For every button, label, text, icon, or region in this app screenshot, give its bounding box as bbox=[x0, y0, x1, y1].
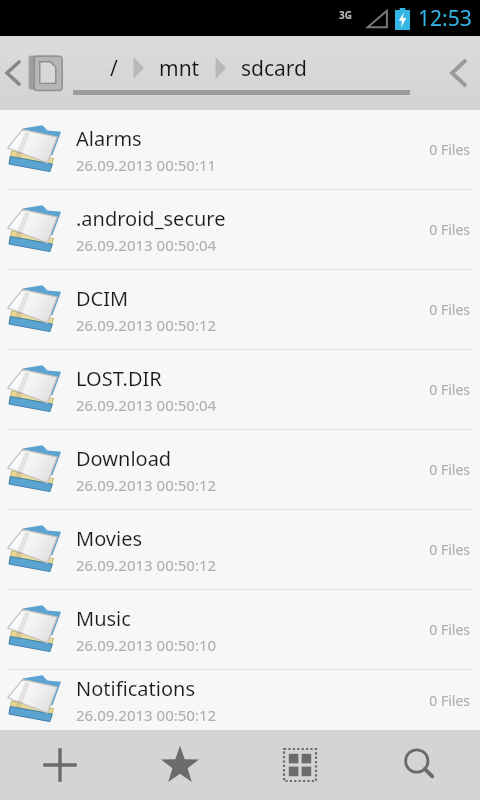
button[interactable]: Back bbox=[0, 36, 26, 110]
staticText: DCIM bbox=[76, 285, 129, 312]
staticText: LOST.DIR bbox=[76, 365, 162, 392]
staticText: .android_secure bbox=[76, 205, 226, 232]
staticText: 0 Files bbox=[429, 300, 470, 319]
staticText: 26.09.2013 00:50:12 bbox=[76, 315, 217, 335]
staticText: 0 Files bbox=[429, 540, 470, 559]
button[interactable]: Favorites bbox=[120, 730, 240, 800]
staticText: 26.09.2013 00:50:12 bbox=[76, 475, 217, 495]
staticText: / bbox=[110, 54, 118, 83]
staticText: 0 Files bbox=[429, 460, 470, 479]
button[interactable]: Add bbox=[0, 730, 120, 800]
staticText: 0 Files bbox=[429, 220, 470, 239]
button[interactable]: sdcard bbox=[227, 54, 322, 83]
button[interactable]: Alarms bbox=[0, 110, 480, 189]
staticText: 0 Files bbox=[429, 140, 470, 159]
staticText: 3G bbox=[339, 8, 352, 22]
staticText: 26.09.2013 00:50:12 bbox=[76, 705, 217, 725]
button[interactable]: Movies bbox=[0, 510, 480, 589]
button[interactable]: LOST.DIR bbox=[0, 350, 480, 429]
button[interactable]: .android_secure bbox=[0, 190, 480, 269]
button[interactable]: Storage bbox=[24, 50, 70, 96]
staticText: Notifications bbox=[76, 675, 195, 702]
staticText: 0 Files bbox=[429, 620, 470, 639]
staticText: mnt bbox=[159, 54, 200, 83]
staticText: 0 Files bbox=[429, 380, 470, 399]
staticText: Alarms bbox=[76, 125, 142, 152]
staticText: 26.09.2013 00:50:11 bbox=[76, 155, 217, 175]
staticText: 26.09.2013 00:50:04 bbox=[76, 395, 217, 415]
staticText: Download bbox=[76, 445, 172, 472]
staticText: 26.09.2013 00:50:04 bbox=[76, 235, 217, 255]
button[interactable]: Notifications bbox=[0, 670, 480, 730]
button[interactable]: mnt bbox=[145, 54, 214, 83]
staticText: 0 Files bbox=[429, 691, 470, 710]
button[interactable]: Music bbox=[0, 590, 480, 669]
button[interactable]: / bbox=[96, 54, 132, 83]
staticText: Music bbox=[76, 605, 131, 632]
button[interactable]: Download bbox=[0, 430, 480, 509]
staticText: sdcard bbox=[241, 54, 308, 83]
staticText: 26.09.2013 00:50:12 bbox=[76, 555, 217, 575]
staticText: Movies bbox=[76, 525, 143, 552]
staticText: 12:53 bbox=[418, 4, 472, 33]
staticText: 26.09.2013 00:50:10 bbox=[76, 635, 217, 655]
button[interactable]: DCIM bbox=[0, 270, 480, 349]
button[interactable]: Search bbox=[360, 730, 480, 800]
button[interactable]: Grid view bbox=[240, 730, 360, 800]
button[interactable]: Collapse bbox=[436, 36, 480, 110]
